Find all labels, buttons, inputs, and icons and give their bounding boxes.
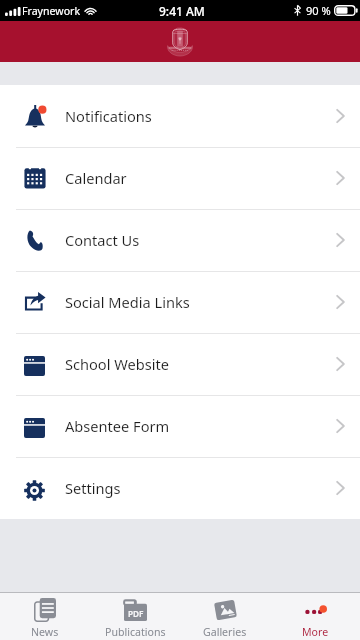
staticText: Notifications [65,106,152,126]
button[interactable]: More [270,593,360,640]
staticText: Fraynework [22,4,81,18]
button[interactable]: Contact Us [0,209,360,271]
staticText: School Website [65,354,169,374]
staticText: Galleries [203,625,247,639]
button[interactable]: Settings [0,457,360,519]
staticText: News [31,625,59,639]
button[interactable]: School Website [0,333,360,395]
other: School crest [166,27,194,57]
button[interactable]: Galleries [180,593,270,640]
button[interactable]: Notifications [0,85,360,147]
staticText: 90 % [306,3,331,18]
button[interactable]: Absentee Form [0,395,360,457]
staticText: Social Media Links [65,292,190,312]
button[interactable]: Calendar [0,147,360,209]
staticText: More [302,625,329,639]
staticText: Calendar [65,168,127,188]
staticText: Publications [105,625,166,639]
button[interactable]: News [0,593,90,640]
button[interactable]: Social Media Links [0,271,360,333]
staticText: PDF [128,608,144,619]
staticText: 9:41 AM [159,3,205,19]
staticText: Contact Us [65,230,140,250]
button[interactable]: PDF [90,593,180,640]
staticText: Absentee Form [65,416,170,436]
staticText: Settings [65,478,121,498]
